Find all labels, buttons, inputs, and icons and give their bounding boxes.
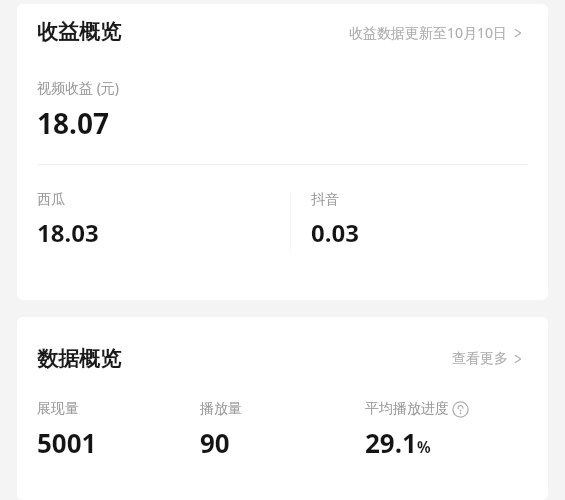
staticText: 29.1 <box>365 425 417 460</box>
staticText: 18.07 <box>37 104 109 142</box>
staticText: 0.03 <box>311 216 359 249</box>
staticText: 18.03 <box>37 216 99 249</box>
staticText: 90 <box>200 425 230 460</box>
staticText: 数据概览 <box>37 346 121 372</box>
staticText: 查看更多 <box>452 350 508 368</box>
staticText: 5001 <box>37 425 97 460</box>
staticText: 展现量 <box>37 400 79 418</box>
staticText: 西瓜 <box>37 191 65 209</box>
staticText: % <box>417 437 431 458</box>
staticText: 平均播放进度 <box>365 400 449 418</box>
button[interactable]: 查看更多 <box>450 347 528 371</box>
staticText: 收益数据更新至10月10日 <box>349 23 508 42</box>
button[interactable]: 收益数据更新至10月10日 <box>347 20 528 45</box>
staticText: 收益概览 <box>37 19 121 45</box>
staticText: 视频收益 (元) <box>37 78 120 97</box>
staticText: 播放量 <box>200 400 242 418</box>
staticText: 抖音 <box>311 191 339 209</box>
